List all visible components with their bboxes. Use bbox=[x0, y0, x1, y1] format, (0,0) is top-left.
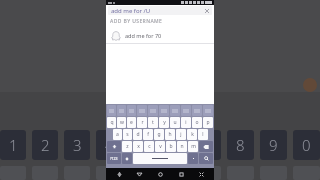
staticText: s bbox=[126, 131, 129, 138]
staticText: y bbox=[163, 119, 166, 126]
staticText: 7 bbox=[203, 135, 212, 155]
button[interactable]: e bbox=[127, 117, 136, 128]
button[interactable]: q bbox=[107, 117, 116, 128]
staticText: u bbox=[173, 119, 177, 126]
staticText: d bbox=[136, 131, 140, 138]
button[interactable]: h bbox=[165, 129, 175, 140]
button[interactable]: j bbox=[176, 129, 186, 140]
button[interactable]: d bbox=[133, 129, 142, 140]
staticText: 2 bbox=[41, 135, 50, 155]
button[interactable] bbox=[117, 105, 126, 116]
staticText: b bbox=[169, 143, 173, 150]
button[interactable]: Clear search bbox=[204, 8, 209, 13]
staticText: t bbox=[152, 119, 154, 126]
staticText: k bbox=[191, 131, 194, 138]
button[interactable]: w bbox=[117, 117, 126, 128]
button[interactable]: y bbox=[159, 117, 169, 128]
staticText: m bbox=[191, 143, 196, 150]
staticText: j bbox=[180, 131, 182, 138]
staticText: z bbox=[126, 143, 129, 150]
button[interactable]: b bbox=[166, 141, 176, 152]
staticText: l bbox=[202, 131, 204, 138]
staticText: 0 bbox=[302, 135, 311, 155]
button[interactable] bbox=[159, 105, 169, 116]
button[interactable]: o bbox=[192, 117, 202, 128]
staticText: r bbox=[141, 119, 144, 126]
button[interactable]: r bbox=[137, 117, 147, 128]
button[interactable]: m bbox=[188, 141, 198, 152]
button[interactable]: f bbox=[143, 129, 153, 140]
staticText: g bbox=[157, 131, 161, 138]
staticText: f bbox=[147, 131, 149, 138]
staticText: a bbox=[116, 131, 119, 138]
button[interactable]: a bbox=[113, 129, 122, 140]
button[interactable]: i bbox=[181, 117, 191, 128]
staticText: add me for 70 bbox=[125, 32, 162, 39]
button[interactable]: l bbox=[198, 129, 208, 140]
staticText: 1 bbox=[9, 135, 18, 155]
staticText: 5 bbox=[137, 135, 146, 155]
button[interactable] bbox=[148, 105, 158, 116]
button[interactable] bbox=[170, 105, 180, 116]
button[interactable] bbox=[137, 105, 147, 116]
button[interactable]: v bbox=[155, 141, 165, 152]
button[interactable]: k bbox=[187, 129, 197, 140]
button[interactable]: Back bbox=[131, 168, 147, 180]
staticText: 4 bbox=[105, 135, 114, 155]
staticText: add me for /U bbox=[111, 7, 151, 15]
staticText: x bbox=[137, 143, 140, 150]
button[interactable]: c bbox=[144, 141, 154, 152]
button[interactable]: u bbox=[170, 117, 180, 128]
staticText: 3 bbox=[73, 135, 82, 155]
staticText: w bbox=[120, 119, 124, 126]
button[interactable]: Shift bbox=[107, 141, 121, 152]
button[interactable]: x bbox=[133, 141, 143, 152]
staticText: n bbox=[180, 143, 184, 150]
staticText: ?123 bbox=[110, 156, 118, 161]
button[interactable] bbox=[127, 105, 136, 116]
button[interactable]: Backspace bbox=[199, 141, 213, 152]
button[interactable]: Home bbox=[152, 168, 168, 180]
staticText: c bbox=[148, 143, 151, 150]
button[interactable]: add me for 70 bbox=[106, 27, 214, 43]
button[interactable]: Period bbox=[188, 153, 198, 164]
button[interactable]: s bbox=[123, 129, 132, 140]
staticText: h bbox=[168, 131, 172, 138]
button[interactable]: add me for /U bbox=[108, 6, 212, 15]
button[interactable]: n bbox=[177, 141, 187, 152]
staticText: o bbox=[195, 119, 199, 126]
staticText: e bbox=[130, 119, 133, 126]
button[interactable]: Emoji bbox=[122, 153, 132, 164]
button[interactable]: g bbox=[154, 129, 164, 140]
button[interactable]: t bbox=[148, 117, 158, 128]
staticText: v bbox=[159, 143, 162, 150]
button[interactable]: Keyboard toggle bbox=[111, 168, 127, 180]
button[interactable]: Recents bbox=[173, 168, 189, 180]
staticText: q bbox=[110, 119, 114, 126]
staticText: i bbox=[185, 119, 187, 126]
button[interactable] bbox=[203, 105, 213, 116]
staticText: 6 bbox=[170, 135, 179, 155]
button[interactable] bbox=[192, 105, 202, 116]
button[interactable] bbox=[107, 105, 116, 116]
button[interactable]: Space bbox=[133, 153, 187, 164]
button[interactable] bbox=[181, 105, 191, 116]
staticText: p bbox=[206, 119, 210, 126]
staticText: ADD BY USERNAME bbox=[110, 18, 163, 25]
button[interactable]: Search bbox=[199, 153, 213, 164]
button[interactable]: p bbox=[203, 117, 213, 128]
button[interactable]: Fullscreen bbox=[193, 168, 209, 180]
button[interactable]: Symbols bbox=[107, 153, 121, 164]
staticText: 9 bbox=[269, 135, 278, 155]
staticText: 8 bbox=[236, 135, 245, 155]
button[interactable]: z bbox=[122, 141, 132, 152]
